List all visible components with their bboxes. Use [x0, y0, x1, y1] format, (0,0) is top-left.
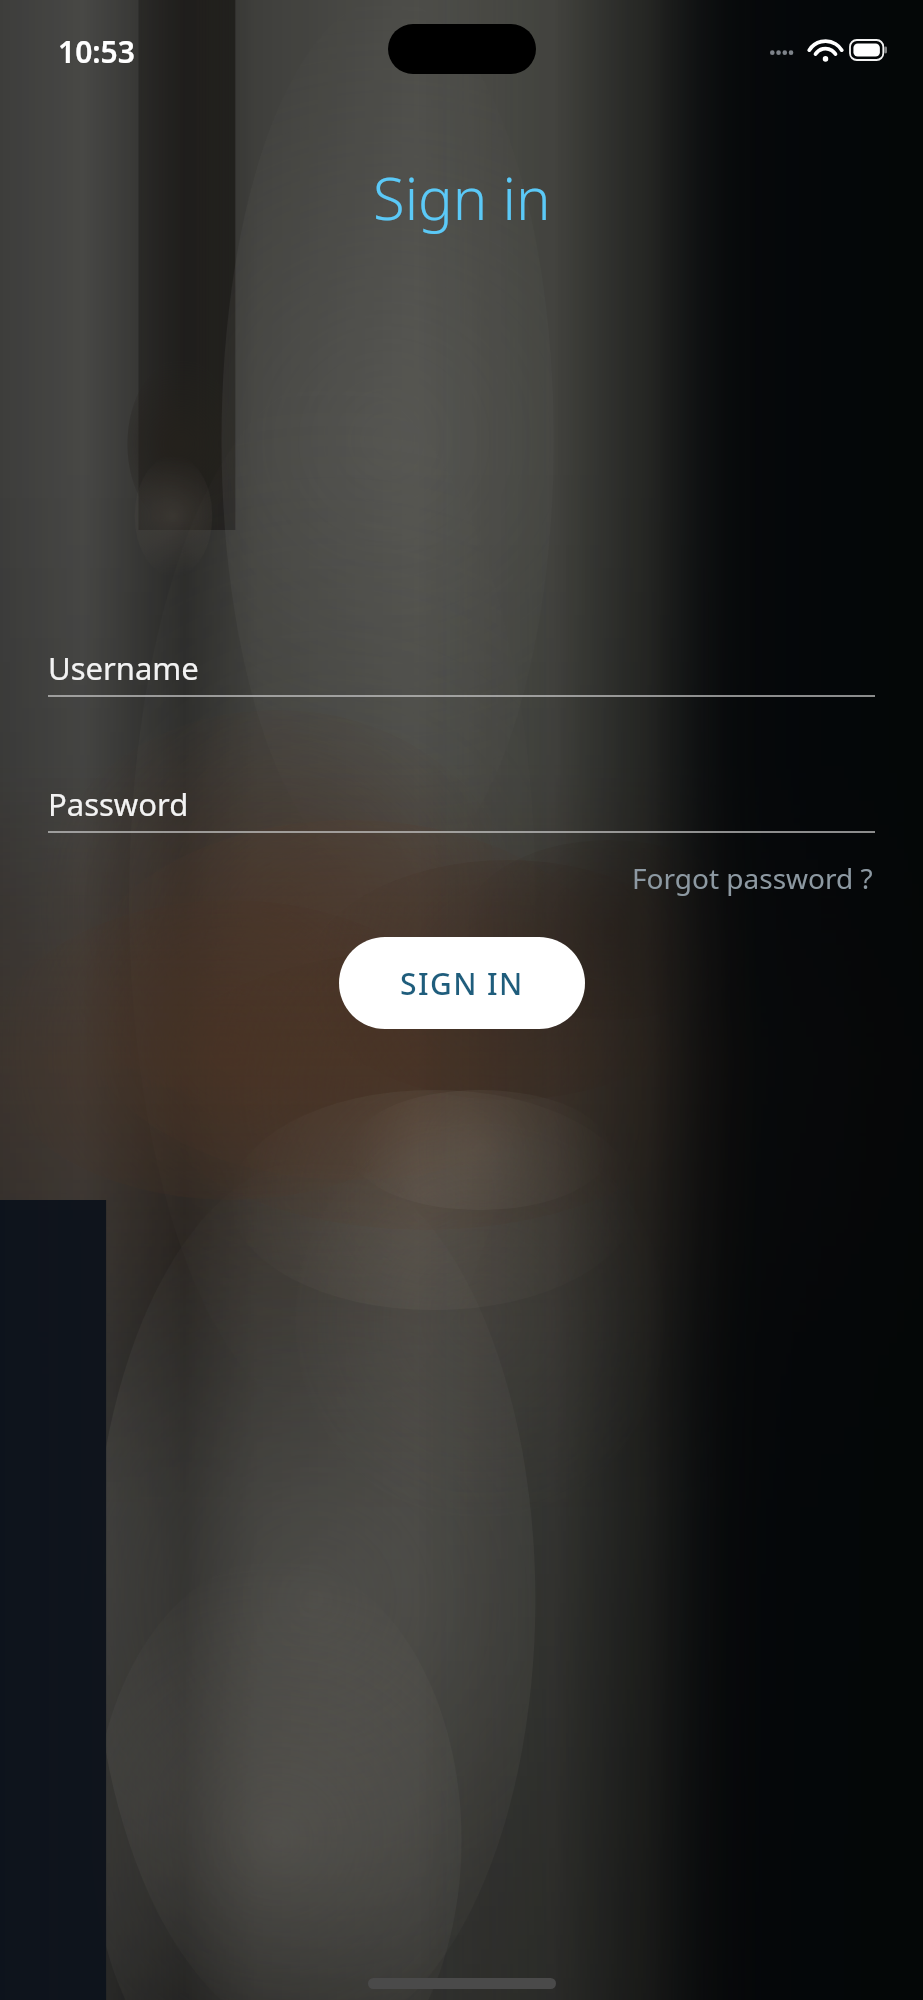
staticText: Password: [48, 783, 189, 825]
staticText: 10:53: [58, 31, 135, 72]
button[interactable]: Password: [48, 777, 875, 833]
staticText: Username: [48, 647, 199, 689]
staticText: Forgot password ?: [632, 859, 873, 897]
staticText: Sign in: [373, 158, 551, 237]
button[interactable]: SIGN IN: [339, 937, 585, 1029]
staticText: SIGN IN: [400, 963, 524, 1004]
button[interactable]: Username: [48, 641, 875, 697]
button[interactable]: Forgot password ?: [630, 851, 875, 905]
